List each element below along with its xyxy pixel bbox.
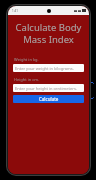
- staticText: Weight in kg.: [14, 57, 39, 62]
- staticText: Calculate Body Mass Index: [13, 21, 84, 45]
- button[interactable]: Scroll up: [89, 80, 95, 86]
- staticText: Enter your height in centimeters.: [15, 86, 77, 91]
- staticText: 1:41: [12, 9, 18, 13]
- button[interactable]: Enter your height in centimeters.: [13, 84, 84, 92]
- button[interactable]: Calculate: [13, 95, 84, 103]
- staticText: Enter your weight in kilograms.: [15, 66, 74, 71]
- button[interactable]: Enter your weight in kilograms.: [13, 64, 84, 72]
- staticText: Height in cm.: [14, 77, 39, 82]
- button[interactable]: Scroll down: [89, 95, 95, 101]
- staticText: Calculate: [39, 96, 59, 102]
